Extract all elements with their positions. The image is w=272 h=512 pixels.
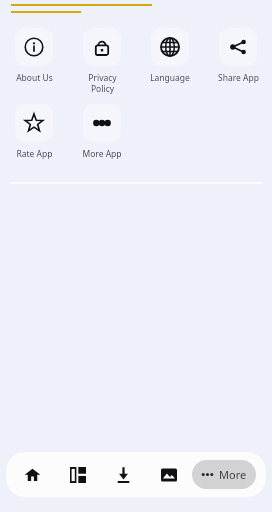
button[interactable]: Categories [55,452,100,497]
other: More App [92,113,112,133]
staticText: About Us [16,72,53,84]
button[interactable]: More App [68,104,136,160]
button[interactable]: More [192,460,256,489]
other: Share App [228,37,248,57]
button[interactable]: Gallery [146,452,192,497]
button[interactable]: Rate App [0,104,68,160]
staticText: Language [150,72,190,84]
staticText: More [219,467,247,482]
button[interactable]: About Us [0,28,68,84]
button[interactable]: Language [136,28,204,84]
other: About Us [24,37,44,57]
button[interactable]: Share App [204,28,272,84]
other: Privacy Policy [92,37,112,57]
staticText: Rate App [16,148,53,160]
staticText: More App [82,148,122,160]
other: Language [160,37,180,57]
other: Rate App [24,113,44,133]
staticText: Share App [218,72,259,84]
button[interactable]: Home [10,452,55,497]
button[interactable]: Downloads [100,452,146,497]
staticText: Privacy Policy [88,72,117,94]
button[interactable]: Privacy Policy [68,28,136,94]
